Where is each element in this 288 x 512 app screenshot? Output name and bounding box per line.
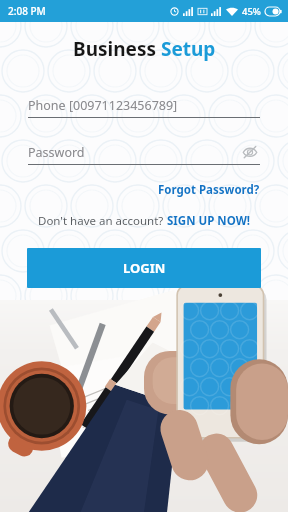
staticText: Forgot Password? (158, 182, 260, 198)
button[interactable]: Forgot Password? (156, 179, 262, 201)
staticText: Business Setup (73, 36, 216, 62)
button[interactable]: Show password (240, 142, 260, 162)
button[interactable]: Phone [00971123456789] (28, 93, 260, 117)
staticText: SIGN UP NOW! (167, 213, 250, 229)
staticText: Phone [00971123456789] (28, 97, 178, 114)
staticText: Password (28, 144, 85, 161)
staticText: LOGIN (123, 259, 166, 277)
staticText: 2:08 PM (8, 4, 46, 18)
staticText: 45% (242, 5, 261, 18)
button[interactable]: SIGN UP NOW! (167, 213, 250, 229)
staticText: Don't have an account? (38, 213, 167, 229)
button[interactable]: LOGIN (27, 248, 261, 288)
button[interactable]: Password (28, 140, 240, 164)
